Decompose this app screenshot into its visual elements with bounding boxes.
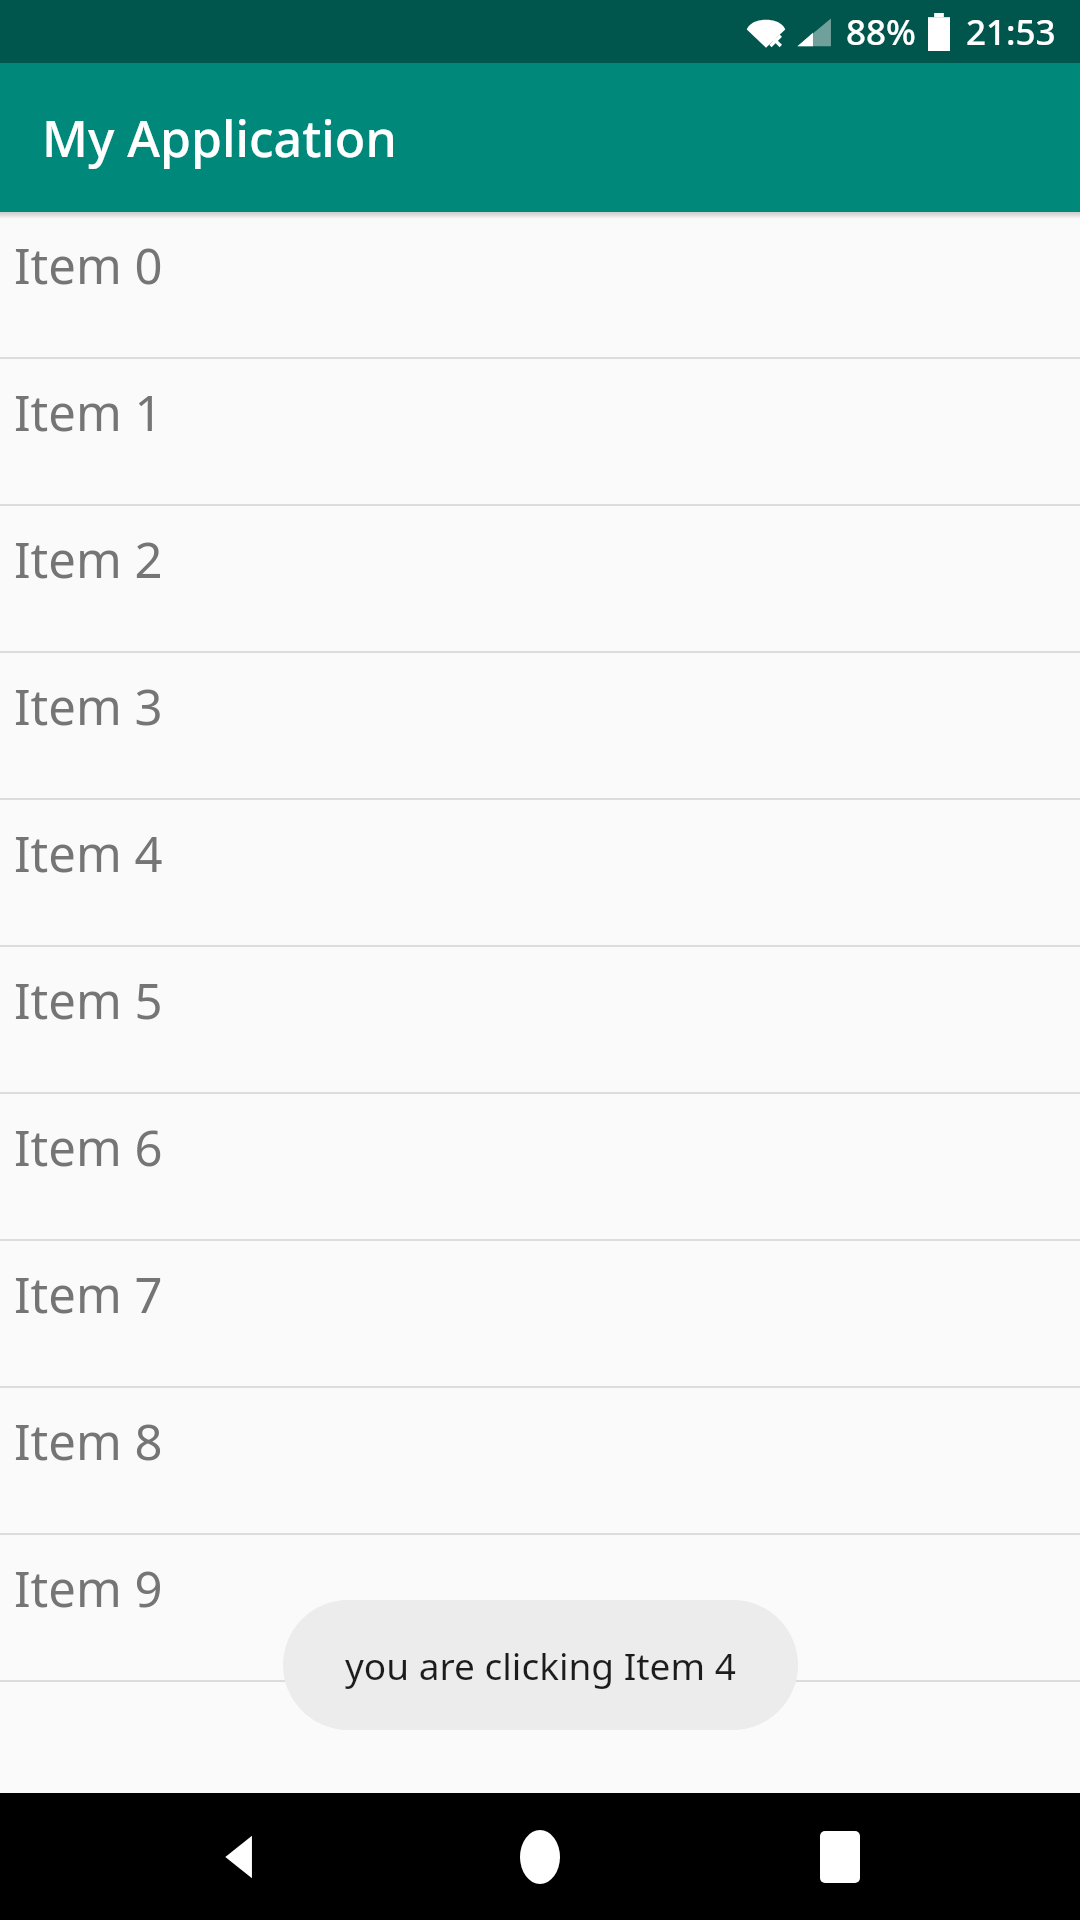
staticText: Item 2 [14,526,163,593]
staticText: Item 4 [14,820,163,887]
staticText: My Application [42,104,397,172]
button[interactable]: Item 5 [0,947,1080,1094]
staticText: Item 6 [14,1114,163,1181]
staticText: Item 5 [14,967,163,1034]
button[interactable]: Item 2 [0,506,1080,653]
staticText: Item 9 [14,1555,163,1622]
staticText: 21:53 [966,8,1056,56]
button[interactable]: Recent apps [780,1797,900,1917]
button[interactable]: Back [180,1797,300,1917]
staticText: 88% [846,8,916,56]
staticText: Item 0 [14,232,163,299]
button[interactable]: Item 3 [0,653,1080,800]
button[interactable]: Item 8 [0,1388,1080,1535]
button[interactable]: Item 7 [0,1241,1080,1388]
staticText: Item 3 [14,673,163,740]
staticText: Item 8 [14,1408,163,1475]
button[interactable]: Item 0 [0,212,1080,359]
button[interactable]: Item 1 [0,359,1080,506]
button[interactable]: Item 9 [0,1535,1080,1682]
button[interactable]: you are clicking Item 4 [283,1600,798,1730]
button[interactable]: Item 6 [0,1094,1080,1241]
staticText: Item 7 [14,1261,163,1328]
staticText: Item 1 [14,379,163,446]
staticText: you are clicking Item 4 [345,1640,736,1690]
button[interactable]: Home [480,1797,600,1917]
button[interactable]: Item 4 [0,800,1080,947]
